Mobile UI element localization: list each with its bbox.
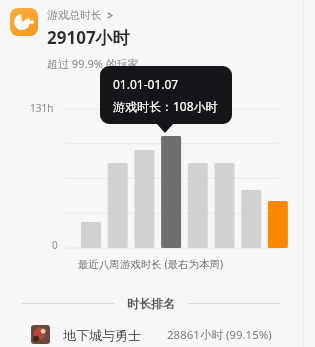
staticText: 131h bbox=[30, 101, 54, 115]
staticText: 地下城与勇士 bbox=[63, 327, 141, 343]
staticText: 游戏总时长 bbox=[47, 8, 102, 22]
staticText: 超过 99.9% 的玩家 bbox=[47, 56, 139, 71]
button[interactable]: 01.01-01.07 bbox=[100, 66, 232, 124]
button[interactable]: 游戏应用图标 bbox=[10, 8, 130, 52]
button[interactable]: 地下城与勇士 bbox=[31, 322, 315, 347]
staticText: 游戏时长：108小时 bbox=[113, 98, 218, 114]
staticText: 01.01-01.07 bbox=[113, 76, 179, 92]
staticText: 最近八周游戏时长 (最右为本周) bbox=[0, 257, 301, 271]
staticText: 29107小时 bbox=[47, 26, 130, 49]
staticText: 28861小时 (99.15%) bbox=[167, 327, 272, 343]
staticText: 0 bbox=[52, 238, 58, 252]
staticText: 时长排名 bbox=[127, 296, 175, 311]
other: 游戏应用图标 bbox=[10, 8, 38, 36]
